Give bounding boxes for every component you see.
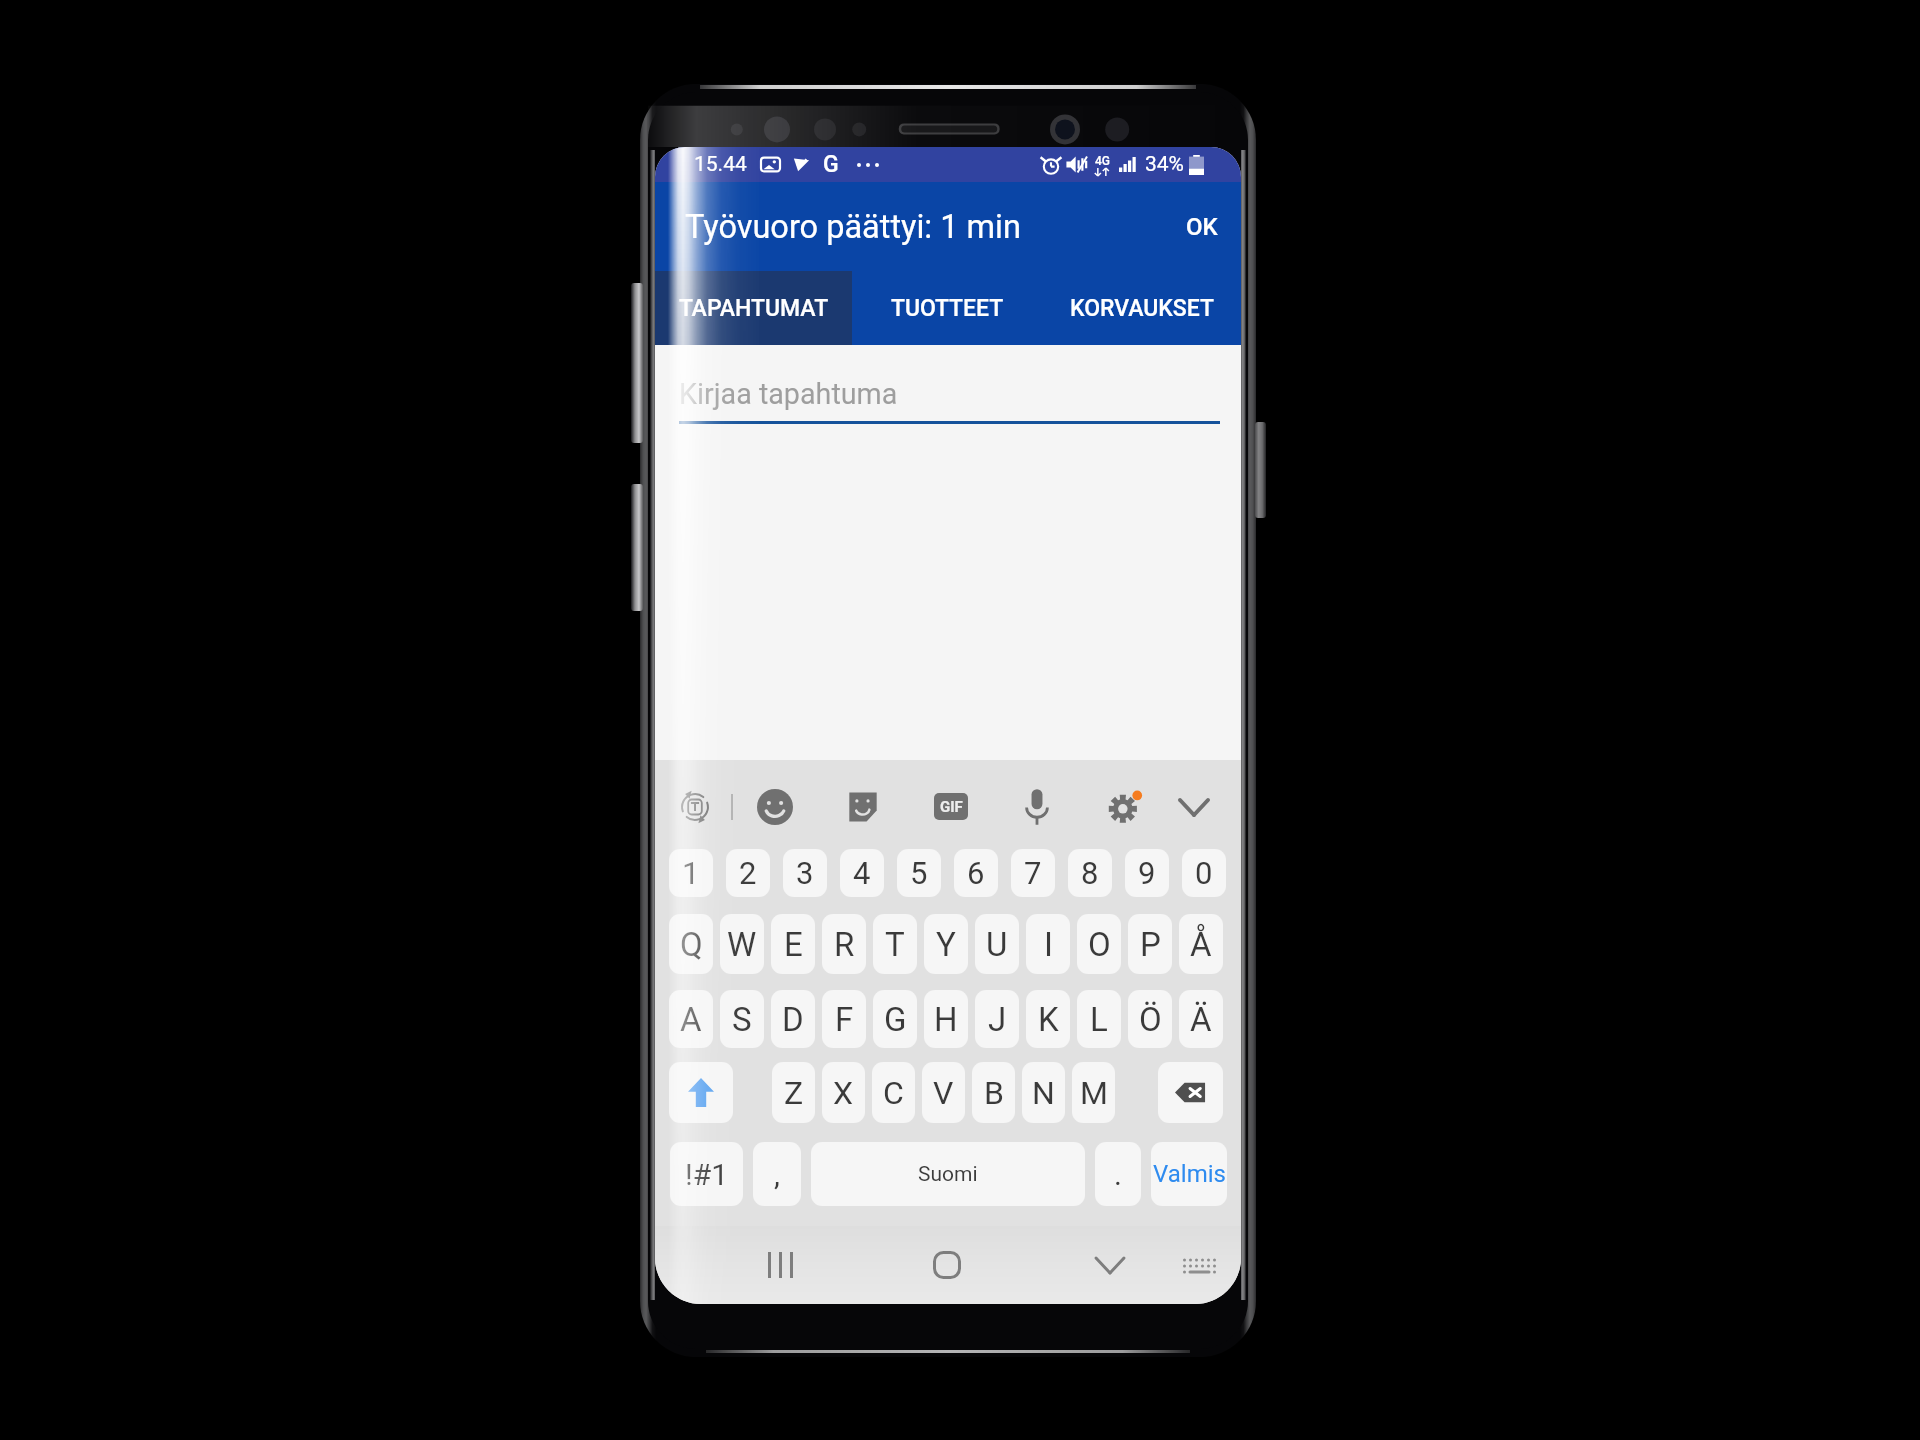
button[interactable]: Stickers <box>845 789 881 825</box>
staticText: L <box>1090 1000 1108 1039</box>
button[interactable]: 2 <box>726 849 770 897</box>
staticText: Ö <box>1139 1000 1162 1039</box>
button[interactable]: !#1 <box>670 1142 743 1206</box>
button[interactable]: Collapse keyboard <box>1177 790 1211 824</box>
staticText: 34% <box>1145 152 1184 177</box>
staticText: . <box>1114 1157 1122 1192</box>
button[interactable]: G <box>873 990 917 1048</box>
staticText: K <box>1038 1000 1059 1039</box>
button[interactable]: P <box>1128 914 1172 974</box>
button[interactable]: 7 <box>1011 849 1055 897</box>
staticText: N <box>1032 1074 1055 1112</box>
staticText: Ä <box>1190 1000 1212 1039</box>
button[interactable]: D <box>771 990 815 1048</box>
button[interactable]: 3 <box>783 849 827 897</box>
staticText: 0 <box>1195 855 1213 891</box>
staticText: 5 <box>910 855 928 891</box>
button[interactable]: Suomi <box>811 1142 1085 1206</box>
staticText: 3 <box>796 855 814 891</box>
button[interactable]: 5 <box>897 849 941 897</box>
staticText: C <box>883 1074 904 1112</box>
staticText: Valmis <box>1153 1160 1226 1188</box>
button[interactable]: Z <box>772 1062 815 1123</box>
button[interactable]: Hide keyboard <box>1179 1248 1219 1288</box>
staticText: 7 <box>1024 855 1042 891</box>
button[interactable]: Y <box>924 914 968 974</box>
button[interactable]: TUOTTEET <box>852 271 1042 345</box>
staticText: T <box>885 925 905 964</box>
button[interactable]: Q <box>669 914 713 974</box>
staticText: 15.44 <box>694 152 747 177</box>
button[interactable]: Home <box>924 1242 970 1288</box>
button[interactable]: Settings <box>1107 789 1143 825</box>
button[interactable]: Backspace <box>1158 1062 1223 1123</box>
button[interactable]: J <box>975 990 1019 1048</box>
button[interactable]: R <box>822 914 866 974</box>
button[interactable]: T <box>873 914 917 974</box>
button[interactable]: N <box>1022 1062 1065 1123</box>
staticText: TAPAHTUMAT <box>679 295 829 322</box>
staticText: A <box>680 1000 702 1039</box>
button[interactable]: Ä <box>1179 990 1223 1048</box>
button[interactable]: B <box>972 1062 1015 1123</box>
button[interactable]: A <box>669 990 713 1048</box>
staticText: O <box>1088 925 1111 964</box>
button[interactable]: 6 <box>954 849 998 897</box>
button[interactable]: V <box>922 1062 965 1123</box>
staticText: !#1 <box>685 1157 729 1192</box>
staticText: S <box>732 1000 752 1039</box>
staticText: KORVAUKSET <box>1070 295 1214 322</box>
button[interactable]: 1 <box>669 849 713 897</box>
button[interactable]: H <box>924 990 968 1048</box>
button[interactable]: GIF <box>934 793 968 820</box>
button[interactable]: 0 <box>1182 849 1226 897</box>
button[interactable]: E <box>771 914 815 974</box>
staticText: 2 <box>739 855 757 891</box>
button[interactable]: X <box>822 1062 865 1123</box>
staticText: G <box>884 1000 907 1039</box>
button[interactable]: F <box>822 990 866 1048</box>
staticText: Q <box>680 925 703 964</box>
button[interactable]: Emoji <box>757 789 793 825</box>
button[interactable]: L <box>1077 990 1121 1048</box>
button[interactable]: Back <box>1087 1242 1133 1288</box>
staticText: GIF <box>940 798 963 816</box>
staticText: TUOTTEET <box>891 295 1004 322</box>
button[interactable]: , <box>753 1142 801 1206</box>
staticText: I <box>1044 925 1053 964</box>
button[interactable]: W <box>720 914 764 974</box>
button[interactable]: S <box>720 990 764 1048</box>
button[interactable]: 4 <box>840 849 884 897</box>
button[interactable]: Shift <box>669 1062 733 1123</box>
button[interactable]: 8 <box>1068 849 1112 897</box>
button[interactable]: I <box>1026 914 1070 974</box>
button[interactable]: M <box>1072 1062 1115 1123</box>
staticText: W <box>727 925 757 964</box>
button[interactable]: Recents <box>756 1242 802 1288</box>
button[interactable]: 9 <box>1125 849 1169 897</box>
staticText: Z <box>784 1074 804 1112</box>
button[interactable]: O <box>1077 914 1121 974</box>
button[interactable]: Valmis <box>1151 1142 1227 1206</box>
staticText: F <box>835 1000 854 1039</box>
staticText: X <box>833 1074 854 1112</box>
button[interactable]: OK <box>1176 197 1228 257</box>
button[interactable]: U <box>975 914 1019 974</box>
staticText: P <box>1140 925 1161 964</box>
staticText: 9 <box>1138 855 1156 891</box>
staticText: J <box>988 1000 1007 1039</box>
button[interactable]: Å <box>1179 914 1223 974</box>
button[interactable]: . <box>1095 1142 1141 1206</box>
button[interactable]: Ö <box>1128 990 1172 1048</box>
staticText: 8 <box>1081 855 1099 891</box>
staticText: 4G <box>1095 154 1110 168</box>
button[interactable]: Translate <box>678 790 712 824</box>
button[interactable]: Voice input <box>1024 788 1050 826</box>
button[interactable]: K <box>1026 990 1070 1048</box>
button[interactable]: Kirjaa tapahtuma <box>655 345 1241 431</box>
staticText: U <box>986 925 1008 964</box>
button[interactable]: TAPAHTUMAT <box>655 271 852 345</box>
button[interactable]: C <box>872 1062 915 1123</box>
button[interactable]: KORVAUKSET <box>1042 271 1241 345</box>
staticText: Å <box>1190 925 1212 964</box>
